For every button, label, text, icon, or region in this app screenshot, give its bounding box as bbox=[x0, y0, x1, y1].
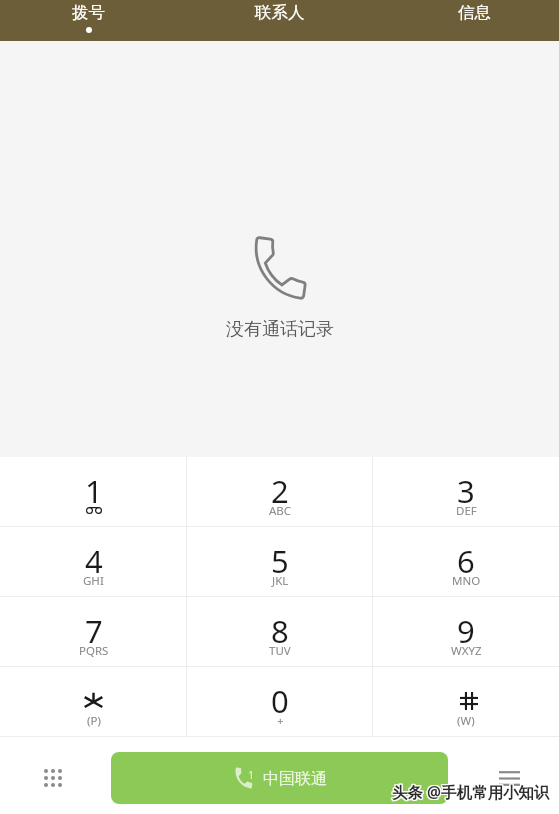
staticText: 头条 @手机常用小知识 bbox=[392, 780, 550, 801]
staticText: 5 bbox=[271, 540, 289, 582]
staticText: 头条 @手机常用小知识 bbox=[391, 780, 549, 801]
button[interactable]: 拨号 bbox=[13, 0, 163, 41]
staticText: 1 bbox=[248, 767, 255, 782]
staticText: 信息 bbox=[458, 2, 491, 23]
staticText: 头条 @手机常用小知识 bbox=[393, 781, 551, 802]
button[interactable]: (P) bbox=[0, 667, 187, 736]
staticText: ABC bbox=[269, 503, 292, 519]
button[interactable]: 1 bbox=[0, 457, 187, 526]
button[interactable]: 联系人 bbox=[205, 0, 355, 41]
staticText: 4 bbox=[85, 540, 103, 582]
staticText: GHI bbox=[83, 573, 104, 589]
staticText: WXYZ bbox=[451, 643, 482, 659]
staticText: 头条 @手机常用小知识 bbox=[391, 782, 549, 803]
button[interactable]: 1 bbox=[111, 752, 448, 804]
button[interactable]: Dialpad bbox=[33, 758, 73, 798]
button[interactable]: 9 bbox=[373, 597, 559, 666]
button[interactable]: 8 bbox=[187, 597, 373, 666]
staticText: DEF bbox=[456, 503, 477, 519]
staticText: 9 bbox=[457, 610, 475, 652]
button[interactable]: 6 bbox=[373, 527, 559, 596]
staticText: 8 bbox=[271, 610, 289, 652]
staticText: + bbox=[277, 713, 284, 729]
button[interactable]: 4 bbox=[0, 527, 187, 596]
staticText: 头条 @手机常用小知识 bbox=[393, 782, 551, 803]
staticText: 2 bbox=[271, 470, 289, 512]
staticText: 6 bbox=[457, 540, 475, 582]
button[interactable]: 信息 bbox=[399, 0, 549, 41]
button[interactable]: Menu bbox=[489, 758, 529, 798]
staticText: 头条 @手机常用小知识 bbox=[391, 781, 549, 802]
staticText: 联系人 bbox=[255, 2, 305, 23]
button[interactable]: (W) bbox=[373, 667, 559, 736]
button[interactable]: 0 bbox=[187, 667, 373, 736]
button[interactable]: 5 bbox=[187, 527, 373, 596]
staticText: PQRS bbox=[79, 643, 109, 659]
staticText: JKL bbox=[272, 573, 289, 589]
staticText: TUV bbox=[269, 643, 291, 659]
staticText: 没有通话记录 bbox=[226, 318, 334, 341]
button[interactable]: 2 bbox=[187, 457, 373, 526]
staticText: 0 bbox=[271, 680, 289, 722]
staticText: 3 bbox=[457, 470, 475, 512]
staticText: 拨号 bbox=[72, 2, 105, 23]
staticText: 中国联通 bbox=[263, 769, 327, 789]
staticText: 头条 @手机常用小知识 bbox=[393, 780, 551, 801]
staticText: (P) bbox=[87, 713, 101, 729]
staticText: 7 bbox=[85, 610, 103, 652]
staticText: (W) bbox=[457, 713, 475, 729]
staticText: MNO bbox=[452, 573, 481, 589]
staticText: 1 bbox=[85, 470, 103, 512]
button[interactable]: 7 bbox=[0, 597, 187, 666]
staticText: 头条 @手机常用小知识 bbox=[392, 782, 550, 803]
button[interactable]: 3 bbox=[373, 457, 559, 526]
staticText: 头条 @手机常用小知识 bbox=[392, 781, 550, 802]
